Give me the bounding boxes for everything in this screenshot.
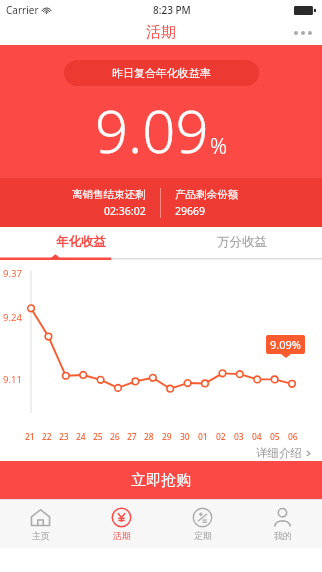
staticText: 29 xyxy=(162,431,172,443)
staticText: 离销售结束还剩 xyxy=(72,188,146,201)
staticText: 24 xyxy=(76,431,86,443)
button[interactable]: 万分收益 xyxy=(161,227,322,261)
staticText: 28 xyxy=(144,431,154,443)
staticText: 02:36:02 xyxy=(104,204,146,218)
staticText: 29669 xyxy=(175,204,206,218)
button[interactable]: 主页 xyxy=(0,500,81,548)
staticText: 9.09 xyxy=(95,91,209,170)
staticText: % xyxy=(210,132,228,161)
staticText: 9.24 xyxy=(3,311,22,324)
button[interactable]: 年化收益 xyxy=(0,227,161,261)
staticText: 详细介绍 xyxy=(256,446,302,460)
staticText: 9.09% xyxy=(270,337,301,352)
staticText: 02 xyxy=(216,431,226,443)
staticText: 06 xyxy=(288,431,298,443)
staticText: 23 xyxy=(59,431,69,443)
button[interactable]: 详细介绍 xyxy=(246,445,322,461)
staticText: 25 xyxy=(93,431,103,443)
staticText: 产品剩余份额 xyxy=(175,188,238,201)
button[interactable]: 定期 xyxy=(162,500,243,548)
staticText: 9.11 xyxy=(3,373,22,386)
staticText: 主页 xyxy=(32,530,50,541)
staticText: 活期 xyxy=(146,23,176,42)
button[interactable]: More options xyxy=(284,25,322,41)
staticText: 04 xyxy=(252,431,262,443)
staticText: 我的 xyxy=(274,530,292,541)
staticText: 年化收益 xyxy=(56,234,106,250)
staticText: 活期 xyxy=(113,530,131,541)
staticText: 昨日复合年化收益率 xyxy=(112,66,211,80)
staticText: 立即抢购 xyxy=(131,471,191,490)
button[interactable]: 昨日复合年化收益率 xyxy=(64,60,259,86)
staticText: 21 xyxy=(25,431,35,443)
staticText: 万分收益 xyxy=(217,234,267,250)
staticText: Carrier xyxy=(6,3,39,17)
button[interactable]: 立即抢购 xyxy=(0,461,322,499)
staticText: 03 xyxy=(234,431,244,443)
staticText: 26 xyxy=(110,431,120,443)
staticText: 8:23 PM xyxy=(153,3,191,17)
button[interactable]: 我的 xyxy=(243,500,322,548)
staticText: 定期 xyxy=(194,530,212,541)
staticText: 05 xyxy=(270,431,280,443)
button[interactable]: 活期 xyxy=(81,500,162,548)
staticText: 27 xyxy=(127,431,137,443)
staticText: 9.37 xyxy=(3,267,22,280)
staticText: 22 xyxy=(42,431,52,443)
staticText: 01 xyxy=(198,431,208,443)
staticText: 30 xyxy=(180,431,190,443)
